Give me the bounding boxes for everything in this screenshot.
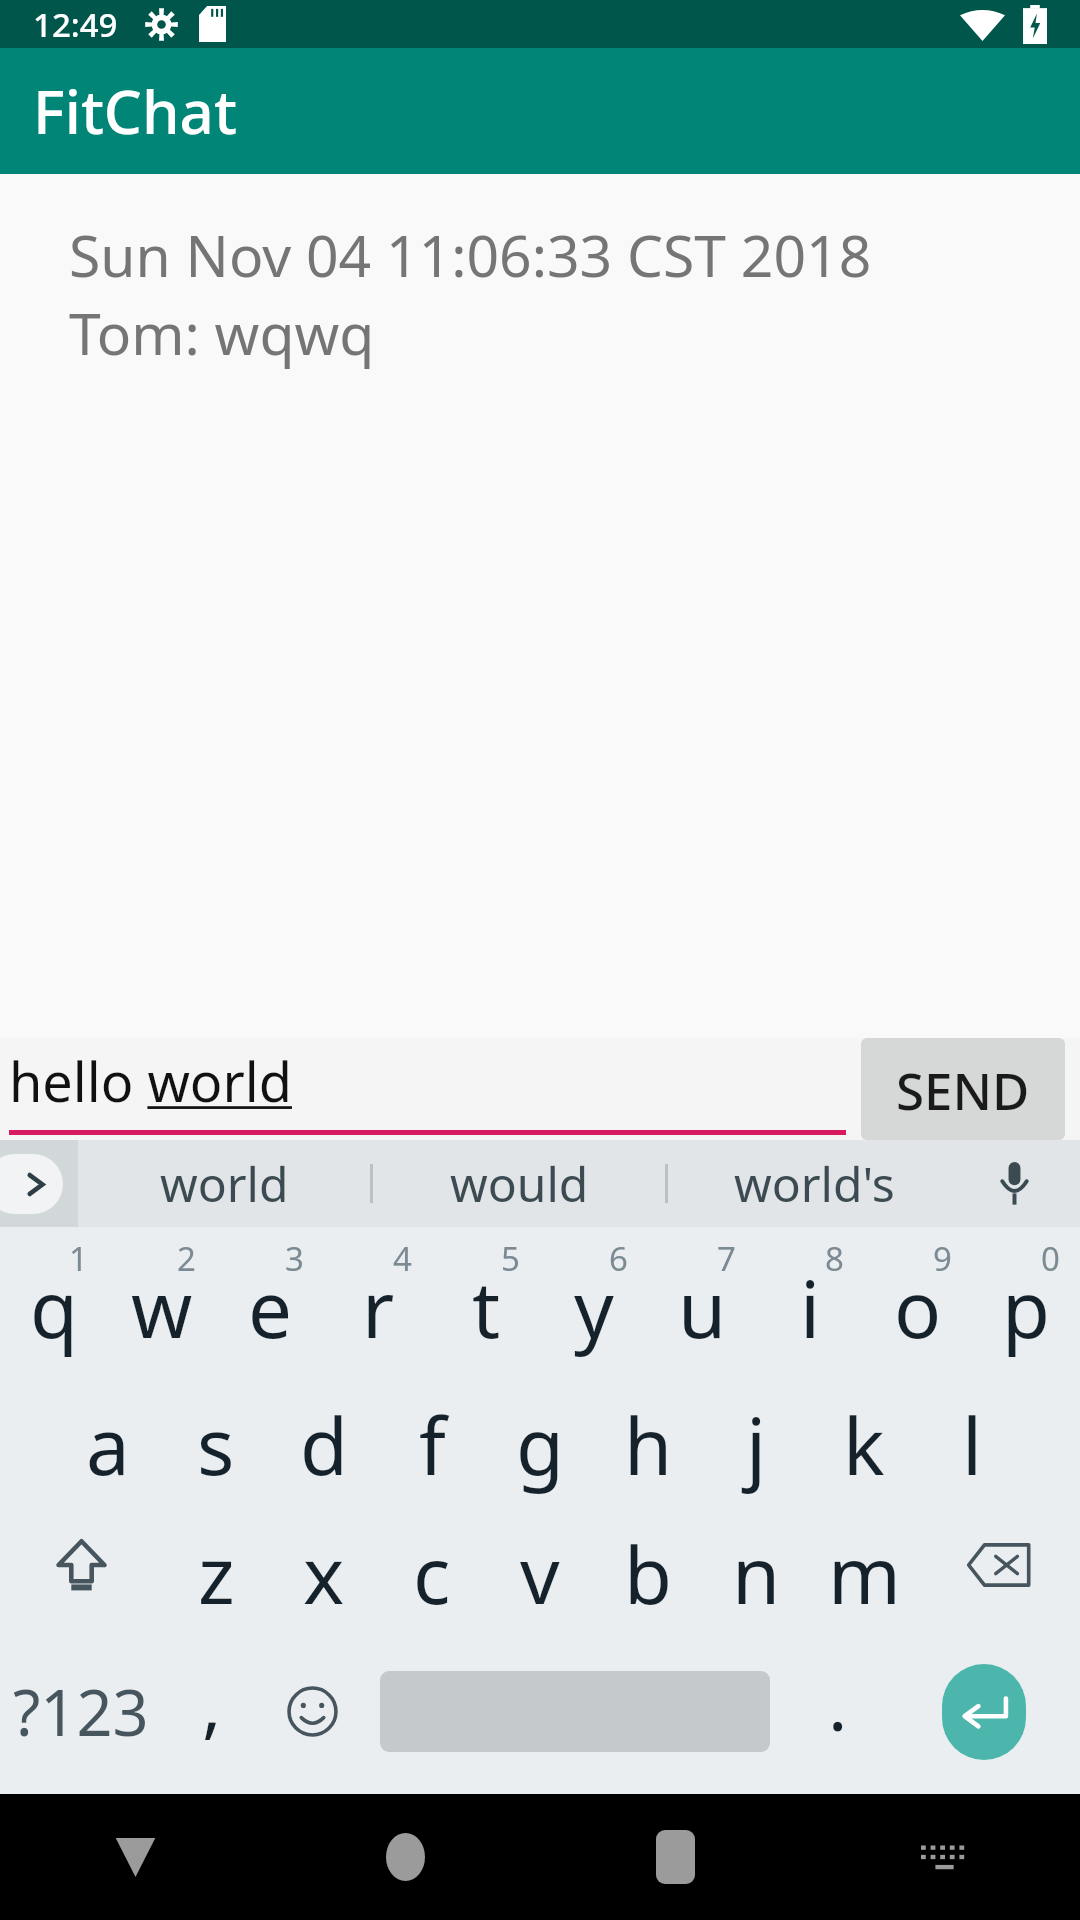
staticText: 2 — [177, 1236, 196, 1281]
button[interactable]: ?123 — [0, 1629, 161, 1794]
button[interactable]: would — [373, 1140, 665, 1227]
staticText: hello world — [9, 1044, 292, 1118]
button[interactable]: c — [378, 1500, 486, 1629]
button[interactable]: Shift — [0, 1500, 162, 1629]
staticText: 1 — [69, 1236, 88, 1281]
button[interactable]: Backspace — [918, 1500, 1080, 1629]
button[interactable]: v — [486, 1500, 594, 1629]
button[interactable]: f — [378, 1371, 486, 1500]
button[interactable]: Emoji — [262, 1629, 363, 1794]
staticText: t — [472, 1255, 501, 1361]
button[interactable]: Enter — [888, 1629, 1080, 1794]
staticText: c — [413, 1521, 451, 1627]
staticText: k — [843, 1392, 885, 1498]
button[interactable]: Voice input — [960, 1140, 1068, 1227]
staticText: 6 — [609, 1236, 628, 1281]
staticText: f — [419, 1392, 446, 1498]
button[interactable]: s — [162, 1371, 270, 1500]
button[interactable]: b — [594, 1500, 702, 1629]
staticText: 9 — [933, 1236, 952, 1281]
button[interactable]: world's — [668, 1140, 960, 1227]
button[interactable]: m — [810, 1500, 918, 1629]
button[interactable]: 6 — [540, 1227, 648, 1371]
staticText: n — [732, 1521, 781, 1627]
button[interactable]: Hide keyboard — [0, 1794, 270, 1920]
staticText: q — [30, 1255, 78, 1361]
button[interactable]: Recent apps — [540, 1794, 810, 1920]
staticText: would — [450, 1151, 589, 1216]
button[interactable]: Switch keyboard — [810, 1794, 1080, 1920]
button[interactable]: n — [702, 1500, 810, 1629]
button[interactable]: h — [594, 1371, 702, 1500]
staticText: h — [624, 1392, 673, 1498]
staticText: a — [86, 1392, 130, 1498]
staticText: 7 — [717, 1236, 736, 1281]
staticText: e — [248, 1255, 292, 1361]
button[interactable]: 1 — [0, 1227, 108, 1371]
button[interactable]: 4 — [324, 1227, 432, 1371]
staticText: z — [198, 1521, 235, 1627]
button[interactable]: 9 — [864, 1227, 972, 1371]
staticText: d — [300, 1392, 348, 1498]
staticText: b — [624, 1521, 672, 1627]
staticText: 8 — [825, 1236, 844, 1281]
button[interactable]: Home — [270, 1794, 540, 1920]
staticText: , — [202, 1654, 222, 1752]
button[interactable]: d — [270, 1371, 378, 1500]
staticText: 5 — [501, 1236, 520, 1281]
button[interactable]: g — [486, 1371, 594, 1500]
button[interactable]: 8 — [756, 1227, 864, 1371]
button[interactable]: . — [787, 1629, 888, 1794]
staticText: l — [962, 1392, 983, 1498]
staticText: ?123 — [13, 1669, 149, 1755]
button[interactable]: 3 — [216, 1227, 324, 1371]
button[interactable]: Expand suggestions — [0, 1140, 78, 1227]
staticText: 0 — [1041, 1236, 1060, 1281]
staticText: x — [303, 1521, 345, 1627]
button[interactable]: Space — [363, 1629, 787, 1794]
staticText: r — [362, 1255, 395, 1361]
staticText: Sun Nov 04 11:06:33 CST 2018 — [69, 216, 872, 294]
button[interactable]: k — [810, 1371, 918, 1500]
staticText: i — [800, 1255, 821, 1361]
button[interactable]: world — [78, 1140, 370, 1227]
staticText: g — [516, 1392, 564, 1498]
button[interactable]: hello world — [9, 1044, 846, 1135]
staticText: y — [574, 1255, 614, 1361]
staticText: s — [197, 1392, 235, 1498]
button[interactable]: SEND — [861, 1038, 1065, 1140]
button[interactable]: x — [270, 1500, 378, 1629]
staticText: 3 — [285, 1236, 304, 1281]
button[interactable]: l — [918, 1371, 1026, 1500]
staticText: j — [746, 1392, 767, 1498]
staticText: w — [131, 1255, 193, 1361]
staticText: u — [678, 1255, 727, 1361]
button[interactable]: 0 — [972, 1227, 1080, 1371]
staticText: world — [160, 1151, 289, 1216]
button[interactable]: 7 — [648, 1227, 756, 1371]
staticText: Tom: wqwq — [69, 294, 375, 372]
button[interactable]: j — [702, 1371, 810, 1500]
button[interactable]: , — [161, 1629, 262, 1794]
button[interactable]: 2 — [108, 1227, 216, 1371]
staticText: p — [1002, 1255, 1050, 1361]
staticText: 4 — [393, 1236, 412, 1281]
button[interactable]: z — [162, 1500, 270, 1629]
staticText: v — [520, 1521, 560, 1627]
staticText: FitChat — [33, 70, 237, 152]
staticText: o — [894, 1255, 942, 1361]
button[interactable]: 5 — [432, 1227, 540, 1371]
staticText: world's — [734, 1151, 895, 1216]
staticText: SEND — [896, 1055, 1030, 1124]
staticText: . — [828, 1654, 848, 1752]
staticText: 12:49 — [33, 2, 118, 47]
button[interactable]: a — [54, 1371, 162, 1500]
staticText: m — [828, 1521, 901, 1627]
